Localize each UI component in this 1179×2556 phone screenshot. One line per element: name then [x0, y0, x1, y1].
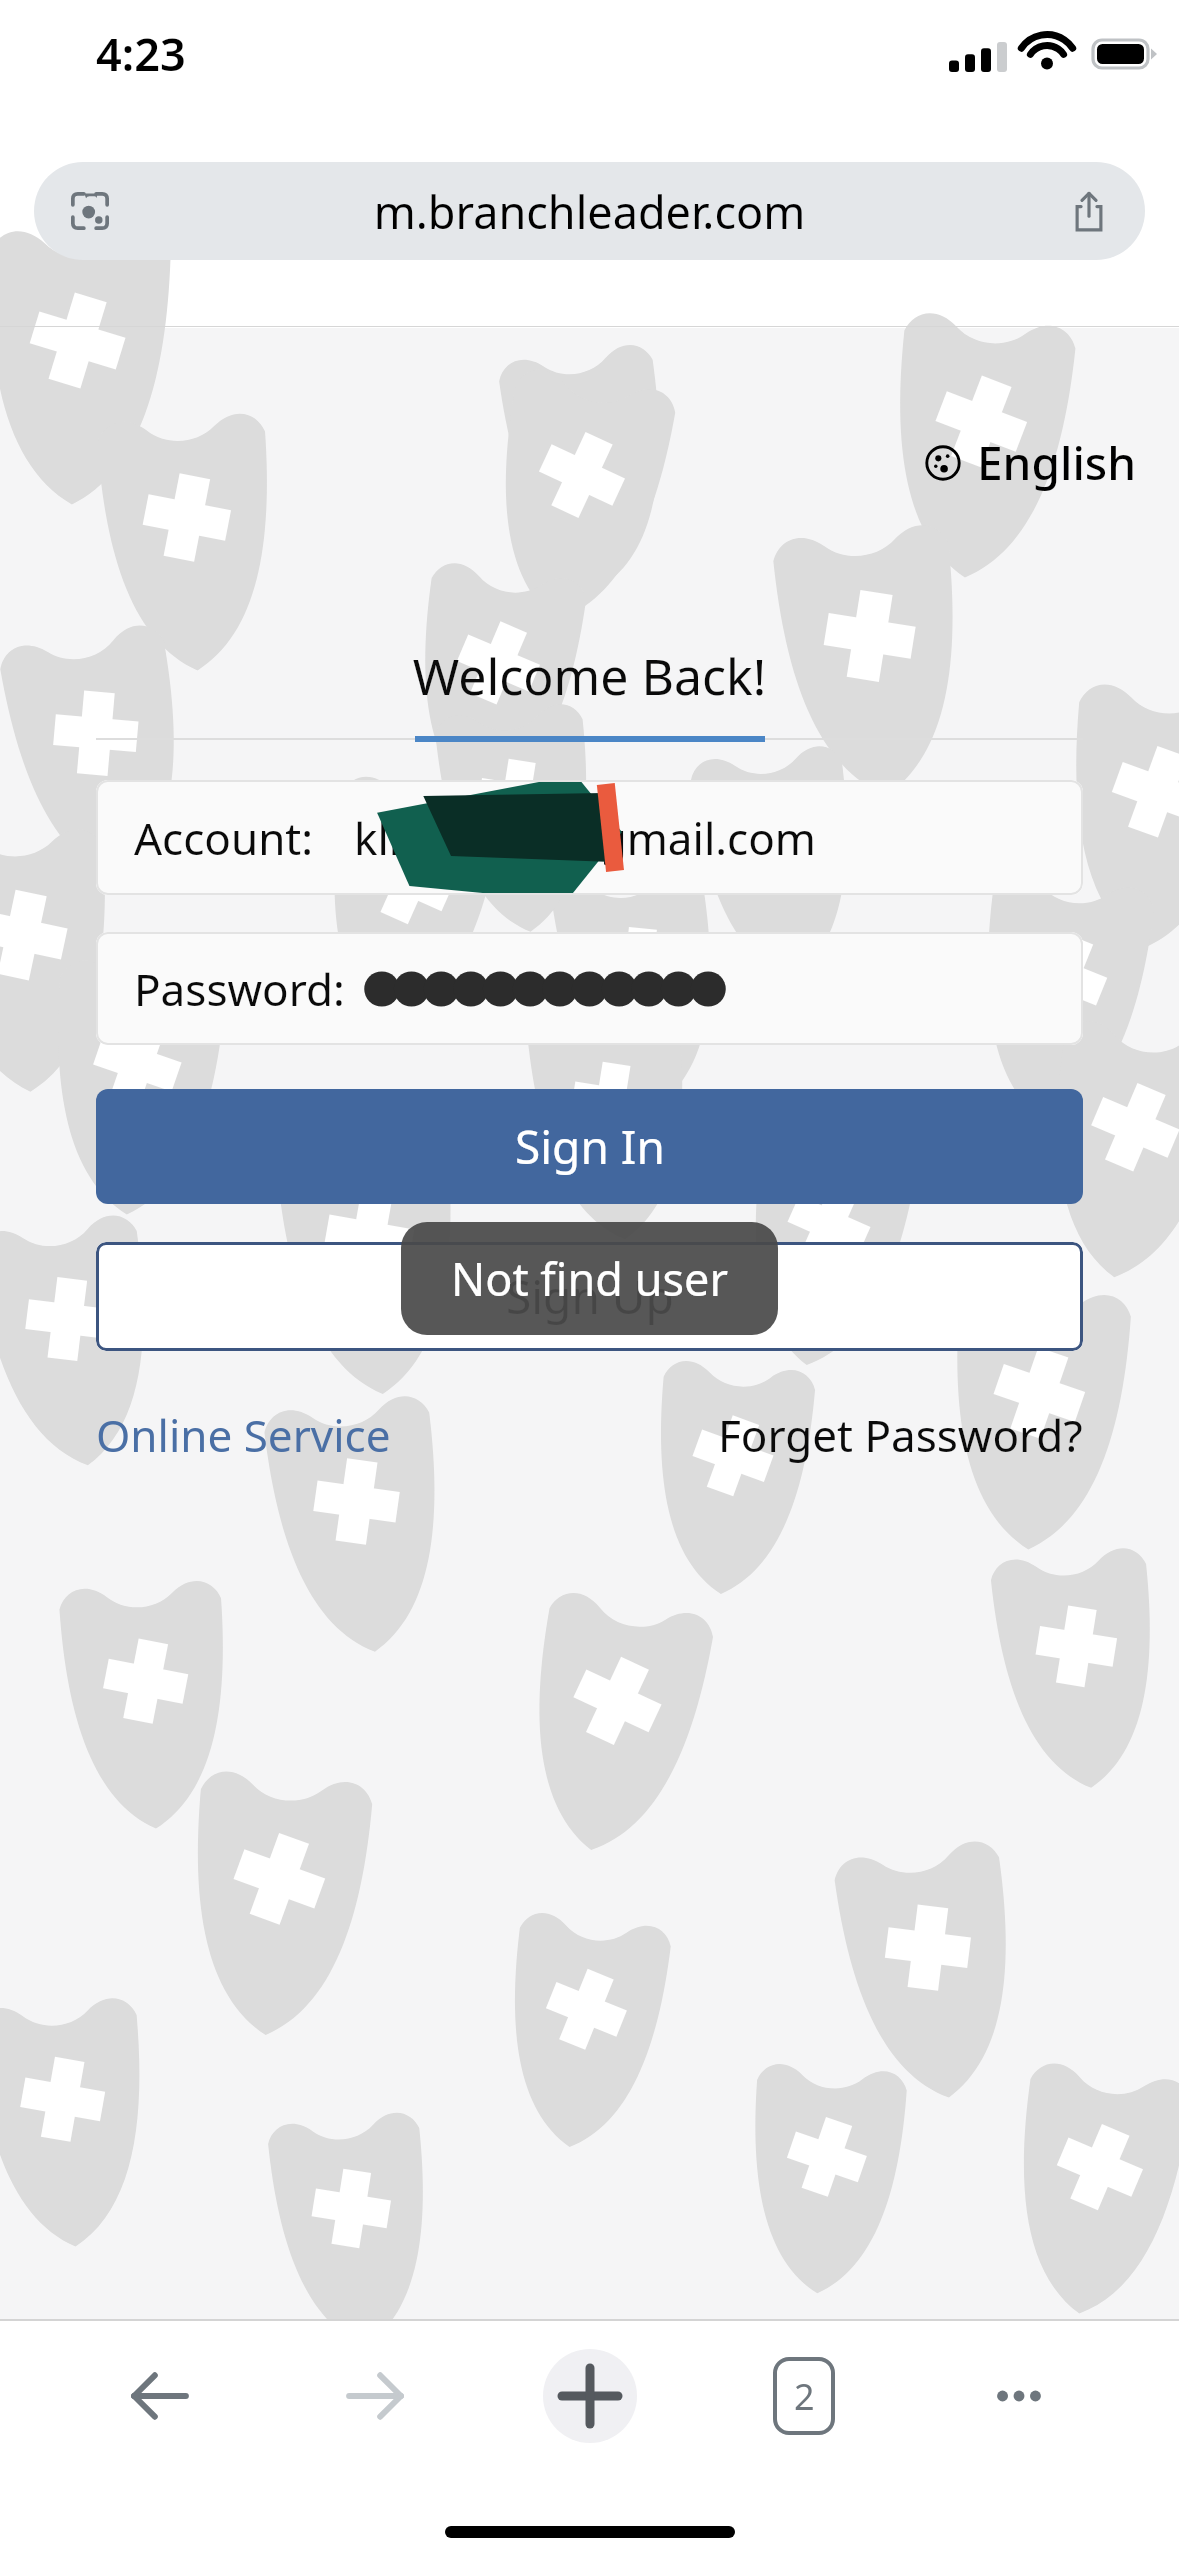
staticText: 2 [794, 2372, 815, 2421]
button[interactable]: Back [105, 2341, 215, 2451]
button[interactable]: Sign Up [96, 1242, 1083, 1351]
staticText: Sign In [515, 1115, 665, 1178]
staticText: kliseqwu2@gmail.com [354, 808, 816, 868]
staticText: Password: [134, 959, 345, 1019]
staticText: Welcome Back! [0, 642, 1179, 710]
staticText: Not find user [451, 1248, 728, 1309]
button[interactable]: More [964, 2341, 1074, 2451]
button[interactable]: Online Service [96, 1405, 391, 1465]
button[interactable]: Scan with camera [34, 162, 1145, 260]
button[interactable]: Account: [96, 780, 1083, 895]
button[interactable]: Sign In [96, 1089, 1083, 1204]
button[interactable]: Scan with camera [62, 183, 118, 239]
button[interactable]: Share [1061, 183, 1117, 239]
staticText: English [977, 431, 1137, 494]
staticText: Sign Up [506, 1265, 674, 1328]
button[interactable]: English [925, 431, 1137, 494]
button[interactable]: Forward [320, 2341, 430, 2451]
staticText: Account: [134, 808, 314, 868]
staticText: 4:23 [96, 23, 186, 84]
button[interactable]: Password: [96, 932, 1083, 1045]
button[interactable]: Tabs [749, 2341, 859, 2451]
staticText: m.branchleader.com [118, 181, 1061, 242]
button[interactable]: New tab [535, 2341, 645, 2451]
button[interactable]: Forget Password? [718, 1405, 1083, 1465]
